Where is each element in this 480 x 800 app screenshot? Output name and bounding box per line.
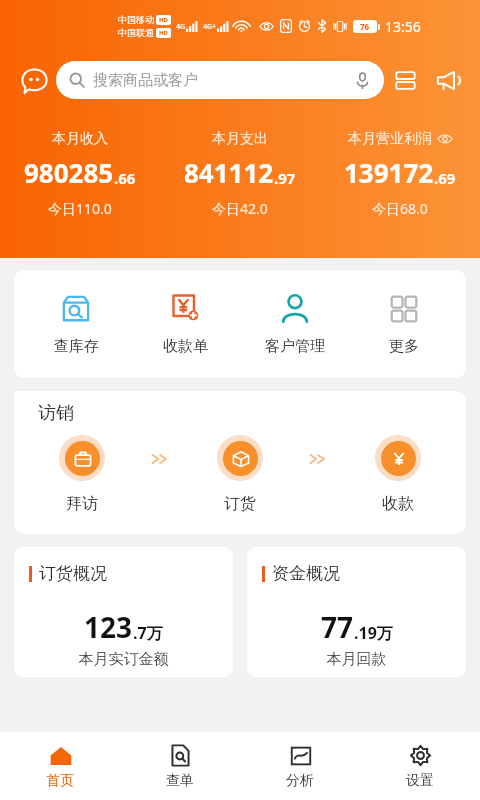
button[interactable]: Scan	[384, 59, 426, 101]
staticText: 收款单	[163, 337, 208, 356]
button[interactable]: 查库存	[28, 292, 124, 356]
staticText: 本月支出	[212, 130, 268, 148]
button[interactable]: 本月支出	[160, 130, 320, 218]
button[interactable]: 客户管理	[247, 292, 343, 356]
button[interactable]: 资金概况	[247, 547, 466, 677]
staticText: 139172	[344, 155, 434, 190]
staticText: 今日42.0	[212, 199, 268, 218]
button[interactable]: 访销	[14, 391, 136, 435]
staticText: 本月实订金额	[14, 650, 233, 669]
staticText: HD	[159, 16, 168, 24]
staticText: 访销	[38, 402, 74, 425]
button[interactable]: 本月营业利润	[320, 130, 480, 218]
staticText: 本月回款	[247, 650, 466, 669]
staticText: 980285	[24, 155, 114, 190]
button[interactable]: 收款	[330, 435, 466, 514]
button[interactable]: 分析	[240, 732, 360, 800]
button[interactable]: 设置	[360, 732, 480, 800]
staticText: 搜索商品或客户	[93, 71, 198, 90]
button[interactable]: 拜访	[14, 435, 150, 514]
staticText: 13:56	[385, 17, 421, 36]
button[interactable]: 首页	[0, 732, 120, 800]
staticText: 订货概况	[39, 563, 107, 584]
staticText: .69	[434, 168, 456, 188]
button[interactable]: 查单	[120, 732, 240, 800]
button[interactable]: Messages	[12, 58, 56, 102]
staticText: 更多	[389, 337, 419, 356]
button[interactable]: 更多	[356, 292, 452, 356]
staticText: 841112	[184, 155, 274, 190]
staticText: .66	[114, 168, 136, 188]
button[interactable]: 订货概况	[14, 547, 233, 677]
staticText: 今日110.0	[48, 199, 112, 218]
staticText: 首页	[46, 772, 74, 790]
staticText: 中国联通	[118, 27, 154, 38]
staticText: .19万	[354, 622, 393, 644]
staticText: .97	[274, 168, 296, 188]
button[interactable]: 收款单	[137, 292, 233, 356]
staticText: 订货	[224, 494, 256, 514]
staticText: 拜访	[66, 494, 98, 514]
staticText: 资金概况	[272, 563, 340, 584]
staticText: .7万	[133, 622, 163, 644]
staticText: 今日68.0	[372, 199, 428, 218]
staticText: 123	[84, 608, 133, 646]
button[interactable]: 本月收入	[0, 130, 160, 218]
staticText: 收款	[382, 494, 414, 514]
staticText: 分析	[286, 772, 314, 790]
button[interactable]: 搜索商品或客户	[56, 61, 384, 99]
staticText: 4G	[176, 22, 186, 32]
staticText: 77	[321, 608, 354, 646]
staticText: 76	[360, 21, 370, 32]
staticText: 客户管理	[265, 337, 325, 356]
staticText: 查库存	[54, 337, 99, 356]
staticText: 中国移动	[118, 14, 154, 25]
staticText: 本月营业利润	[348, 130, 432, 148]
button[interactable]: Announcements	[426, 59, 468, 101]
button[interactable]: 订货	[172, 435, 308, 514]
staticText: 设置	[406, 772, 434, 790]
staticText: HD	[159, 29, 168, 37]
staticText: 本月收入	[52, 130, 108, 148]
staticText: 查单	[166, 772, 194, 790]
staticText: 4G+	[203, 22, 217, 32]
